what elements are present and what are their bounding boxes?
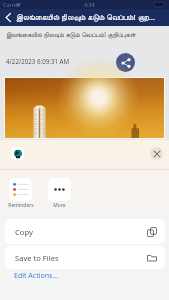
staticText: Reminders <box>8 202 34 209</box>
staticText: Edit Actions… <box>14 271 58 281</box>
staticText: 4/22/2023 6:09:31 AM <box>6 57 70 65</box>
button[interactable]: Edit Actions… <box>5 270 75 282</box>
staticText: இலங்கையில் நிலவும் கடும் வெப்பம்! குறிப்… <box>6 30 136 39</box>
button[interactable]: Reminders <box>1 178 40 209</box>
button[interactable]: Close <box>150 147 163 160</box>
staticText: Carrier <box>3 1 21 8</box>
button[interactable]: Copy <box>5 219 165 244</box>
staticText: 4:34 <box>84 1 95 8</box>
staticText: More <box>53 202 66 209</box>
button[interactable]: More <box>40 178 79 209</box>
button[interactable]: Share <box>116 53 135 72</box>
button[interactable]: Back <box>0 9 16 26</box>
staticText: Save to Files <box>15 253 59 263</box>
staticText: Copy <box>15 227 33 237</box>
button[interactable]: Save to Files <box>5 246 165 269</box>
staticText: இலங்கையில் நிலவும் கடும் வெப்பம்! குற… <box>16 12 156 23</box>
